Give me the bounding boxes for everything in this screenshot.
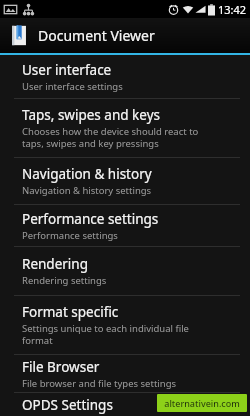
- button[interactable]: Document Viewer: [0, 18, 250, 53]
- staticText: Rendering settings: [22, 274, 107, 287]
- staticText: Chooses how the device should react to t…: [22, 125, 199, 150]
- staticText: Taps, swipes and keys: [22, 106, 160, 124]
- staticText: Settings unique to each individual file …: [22, 322, 189, 347]
- button[interactable]: Rendering: [0, 247, 250, 295]
- staticText: Document Viewer: [38, 26, 155, 45]
- staticText: Format specific: [22, 303, 119, 321]
- button[interactable]: OPDS Settings: [0, 393, 250, 416]
- staticText: Navigation & history: [22, 165, 152, 183]
- staticText: Rendering: [22, 255, 88, 273]
- staticText: Performance settings: [22, 210, 159, 228]
- button[interactable]: User interface: [0, 55, 250, 98]
- staticText: alternativein.com: [164, 397, 240, 409]
- staticText: Performance settings: [22, 229, 118, 242]
- staticText: File browser and file types settings: [22, 377, 177, 390]
- staticText: File Browser: [22, 358, 100, 376]
- button[interactable]: Format specific: [0, 296, 250, 354]
- staticText: User interface: [22, 61, 112, 79]
- staticText: User interface settings: [22, 80, 123, 93]
- button[interactable]: File Browser: [0, 355, 250, 392]
- staticText: Navigation & history settings: [22, 184, 152, 197]
- button[interactable]: Performance settings: [0, 205, 250, 246]
- button[interactable]: Taps, swipes and keys: [0, 99, 250, 157]
- staticText: OPDS Settings: [22, 396, 113, 414]
- staticText: 13:42: [218, 2, 247, 17]
- button[interactable]: Navigation & history: [0, 158, 250, 204]
